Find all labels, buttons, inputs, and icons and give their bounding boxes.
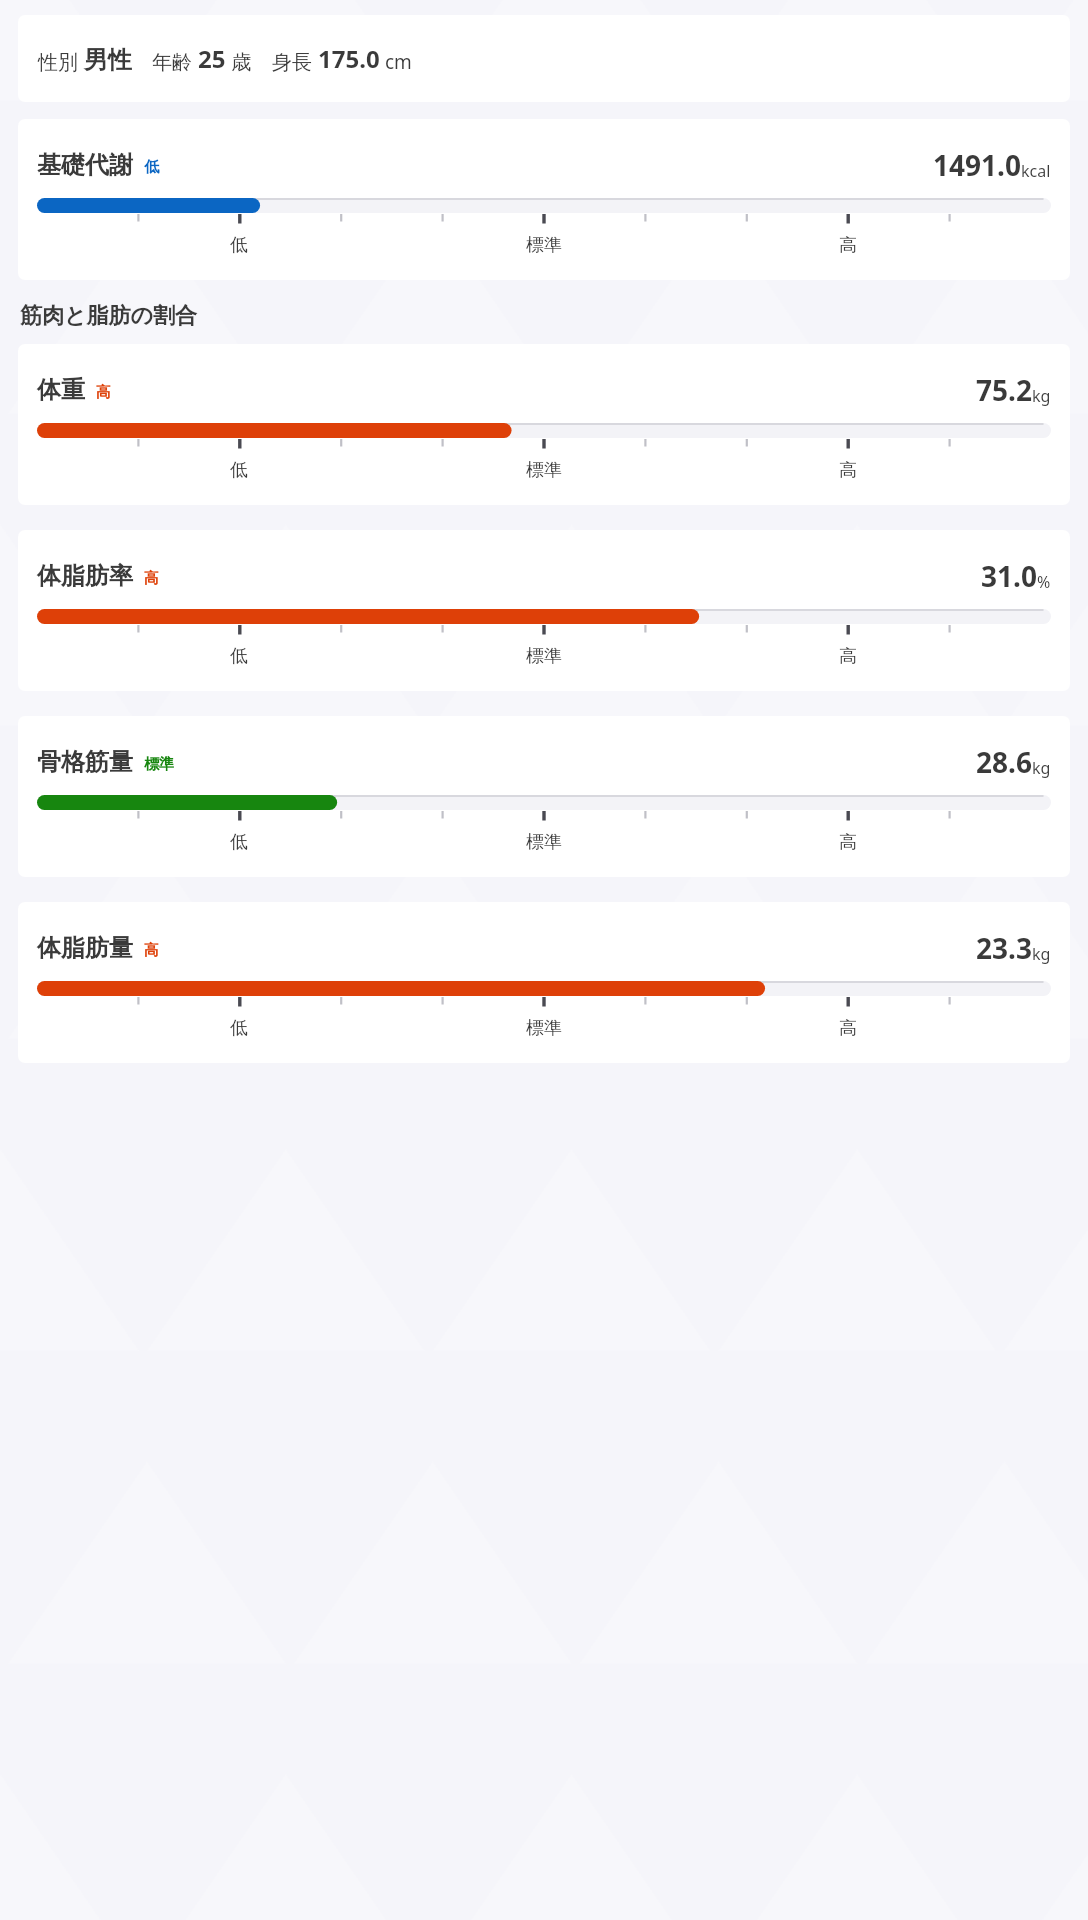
button[interactable]: 体脂肪量 [18,902,1070,1063]
staticText: 低 [230,234,248,257]
button[interactable]: 性別 [18,15,1070,102]
staticText: kcal [1021,160,1051,182]
staticText: 身長 [272,48,318,75]
staticText: 低 [230,831,248,854]
staticText: 標準 [526,1017,562,1040]
button[interactable]: 骨格筋量 [18,716,1070,877]
staticText: 175.0 [318,42,380,75]
staticText: cm [380,49,412,75]
staticText: kg [1032,943,1051,965]
staticText: 性別 [38,48,84,75]
staticText: 標準 [526,831,562,854]
button[interactable]: 基礎代謝 [18,119,1070,280]
staticText: 低 [230,645,248,668]
staticText: 高 [144,941,159,960]
staticText: 標準 [526,459,562,482]
staticText: 低 [230,1017,248,1040]
button[interactable]: 体脂肪率 [18,530,1070,691]
staticText: 1491.0 [933,146,1021,184]
staticText: 31.0 [981,557,1037,595]
staticText: 高 [144,569,159,588]
staticText: kg [1032,385,1051,407]
button[interactable]: 体重 [18,344,1070,505]
staticText: 高 [96,383,111,402]
staticText: 高 [839,645,857,668]
staticText: 28.6 [976,743,1032,781]
staticText: 標準 [144,755,174,774]
staticText: 75.2 [976,371,1032,409]
staticText: % [1037,571,1051,593]
staticText: 25 [198,42,226,75]
staticText: 高 [839,1017,857,1040]
staticText: 歳 [226,48,252,75]
staticText: 体脂肪量 [37,933,133,963]
staticText: 体重 [37,375,85,405]
staticText: 基礎代謝 [37,150,133,180]
staticText: 高 [839,459,857,482]
staticText: 年齢 [152,48,198,75]
staticText: 標準 [526,645,562,668]
staticText: 骨格筋量 [37,747,133,777]
staticText: 体脂肪率 [37,561,133,591]
staticText: kg [1032,757,1051,779]
staticText: 低 [144,158,159,177]
staticText: 低 [230,459,248,482]
staticText: 高 [839,831,857,854]
staticText: 男性 [84,45,132,75]
staticText: 筋肉と脂肪の割合 [20,302,198,330]
staticText: 23.3 [976,929,1032,967]
staticText: 高 [839,234,857,257]
staticText: 標準 [526,234,562,257]
